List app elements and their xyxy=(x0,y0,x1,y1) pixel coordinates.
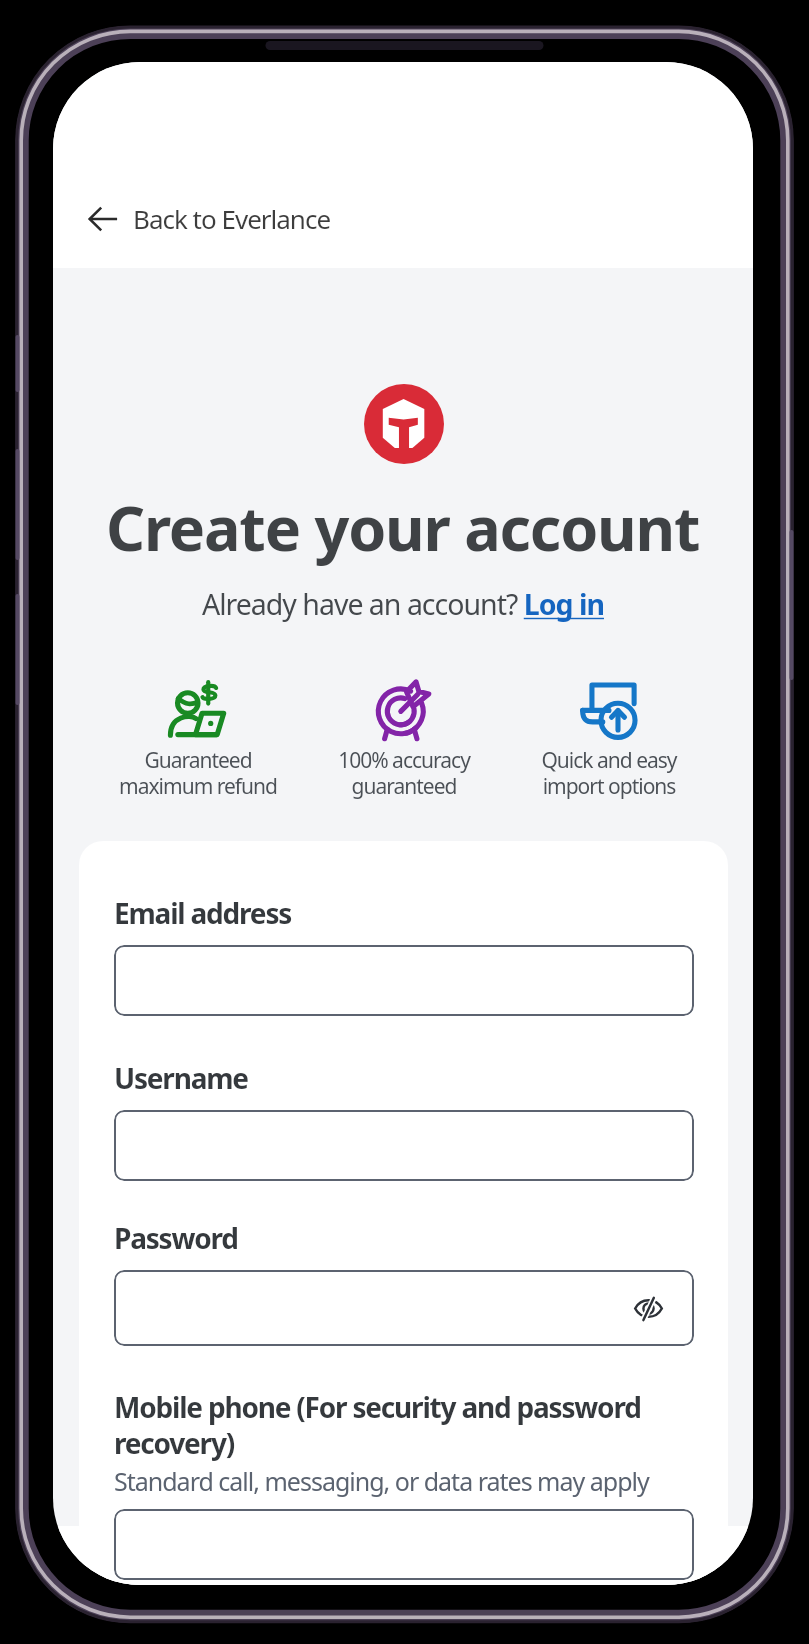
other: Show password xyxy=(634,1294,663,1323)
staticText: Guaranteed maximum refund xyxy=(119,746,277,801)
staticText: Password xyxy=(114,1219,238,1257)
staticText: Create your account xyxy=(106,486,700,569)
staticText: Username xyxy=(114,1059,248,1097)
staticText: Back to Everlance xyxy=(133,201,331,236)
staticText: Mobile phone (For security and password … xyxy=(114,1388,694,1462)
button[interactable]: Back xyxy=(88,201,331,236)
button[interactable] xyxy=(114,945,694,1016)
button[interactable] xyxy=(114,1110,694,1181)
staticText: Already have an account? Log in xyxy=(202,585,604,624)
button[interactable]: Show password xyxy=(114,1270,694,1346)
staticText: 100% accuracy guaranteed xyxy=(338,746,470,801)
other: Back xyxy=(88,204,118,234)
button[interactable] xyxy=(114,1509,694,1580)
staticText: Quick and easy import options xyxy=(541,746,677,801)
staticText: Email address xyxy=(114,894,292,932)
staticText: Standard call, messaging, or data rates … xyxy=(114,1464,649,1498)
